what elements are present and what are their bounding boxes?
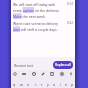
- button[interactable]: Clipboard: [49, 71, 55, 77]
- button[interactable]: o: [63, 81, 69, 87]
- staticText: o: [65, 82, 68, 87]
- button[interactable]: Restore text: [13, 62, 35, 69]
- staticText: q: [13, 82, 16, 87]
- button[interactable]: Handwriting: [40, 71, 46, 77]
- staticText: i: [60, 82, 61, 87]
- staticText: Restore text: [14, 63, 34, 68]
- button[interactable]: Replace all: [53, 61, 73, 69]
- staticText: 0:14: [67, 2, 73, 6]
- staticText: Worst case scenario delivery date will s…: [13, 21, 63, 32]
- staticText: 0:22: [67, 21, 73, 25]
- staticText: t: [41, 82, 43, 87]
- button[interactable]: u: [51, 81, 57, 87]
- button[interactable]: q: [11, 81, 18, 87]
- staticText: y: [47, 82, 49, 87]
- button[interactable]: i: [57, 81, 63, 87]
- button[interactable]: y: [45, 81, 51, 87]
- staticText: r: [35, 82, 37, 87]
- button[interactable]: t: [39, 81, 45, 87]
- staticText: e: [27, 82, 30, 87]
- button[interactable]: Search: [12, 71, 18, 77]
- button[interactable]: GIF: [21, 71, 27, 77]
- button[interactable]: e: [25, 81, 32, 87]
- button[interactable]: w: [18, 81, 25, 87]
- button[interactable]: r: [32, 81, 39, 87]
- staticText: p: [71, 82, 74, 87]
- staticText: u: [53, 82, 56, 87]
- staticText: w: [20, 82, 23, 87]
- button[interactable]: Emoji: [31, 71, 37, 77]
- staticText: Replace all: [55, 63, 71, 67]
- button[interactable]: Voice input: [68, 71, 74, 77]
- button[interactable]: Settings: [59, 71, 65, 77]
- staticText: We will start off today with some update…: [13, 2, 63, 19]
- button[interactable]: p: [69, 81, 75, 87]
